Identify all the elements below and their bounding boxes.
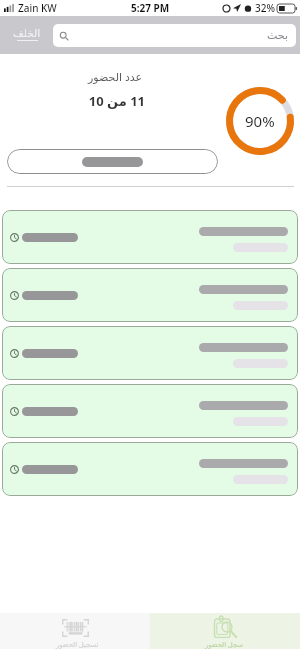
staticText: تسجيل الحضور (56, 640, 99, 649)
staticText: الخلف (13, 27, 41, 39)
staticText: Zain KW (18, 1, 57, 15)
button[interactable]: الخلف (13, 27, 41, 41)
staticText: بحث (267, 29, 288, 42)
button[interactable] (2, 268, 298, 322)
button[interactable] (2, 326, 298, 380)
button[interactable] (2, 442, 298, 496)
button[interactable]: تسجيل الحضور (0, 613, 150, 649)
staticText: عدد الحضور (88, 69, 143, 84)
button[interactable] (2, 384, 298, 438)
staticText: 90% (245, 111, 275, 131)
staticText: سجل الحضور (205, 640, 244, 649)
button[interactable] (7, 149, 218, 174)
staticText: 32% (255, 1, 275, 15)
button[interactable]: بحث (53, 24, 296, 47)
staticText: 11 من 10 (88, 92, 145, 110)
button[interactable] (2, 210, 298, 264)
staticText: 5:27 PM (131, 1, 170, 15)
button[interactable]: سجل الحضور (150, 613, 300, 649)
